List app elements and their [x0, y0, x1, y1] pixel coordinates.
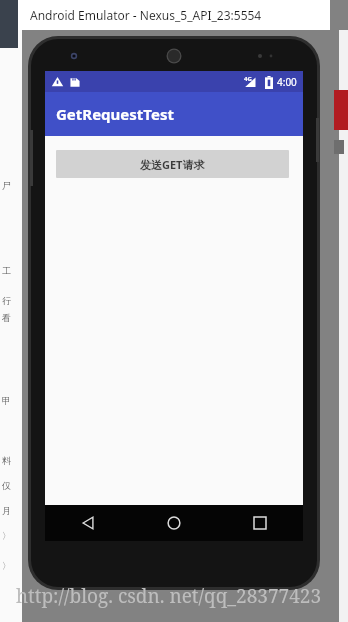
- staticText: 甲: [2, 395, 11, 406]
- button[interactable]: Back: [45, 505, 131, 541]
- staticText: 发送GET请求: [140, 157, 205, 172]
- button[interactable]: Home: [131, 505, 217, 541]
- button[interactable]: Recent apps: [217, 505, 303, 541]
- staticText: 看: [2, 312, 11, 323]
- staticText: Android Emulator - Nexus_5_API_23:5554: [30, 7, 262, 23]
- staticText: 4G: [244, 75, 252, 83]
- staticText: GetRequestTest: [56, 104, 174, 124]
- button[interactable]: 发送GET请求: [56, 150, 289, 178]
- staticText: 〉: [2, 560, 11, 571]
- staticText: 行: [2, 295, 11, 306]
- staticText: 仅: [2, 480, 11, 491]
- staticText: 〉: [2, 530, 11, 541]
- staticText: 料: [2, 455, 11, 466]
- staticText: http://blog. csdn. net/qq_28377423: [16, 583, 322, 609]
- staticText: 4:00: [277, 75, 297, 89]
- staticText: 工: [2, 265, 11, 276]
- staticText: 尸: [2, 180, 11, 191]
- staticText: 月: [2, 505, 11, 516]
